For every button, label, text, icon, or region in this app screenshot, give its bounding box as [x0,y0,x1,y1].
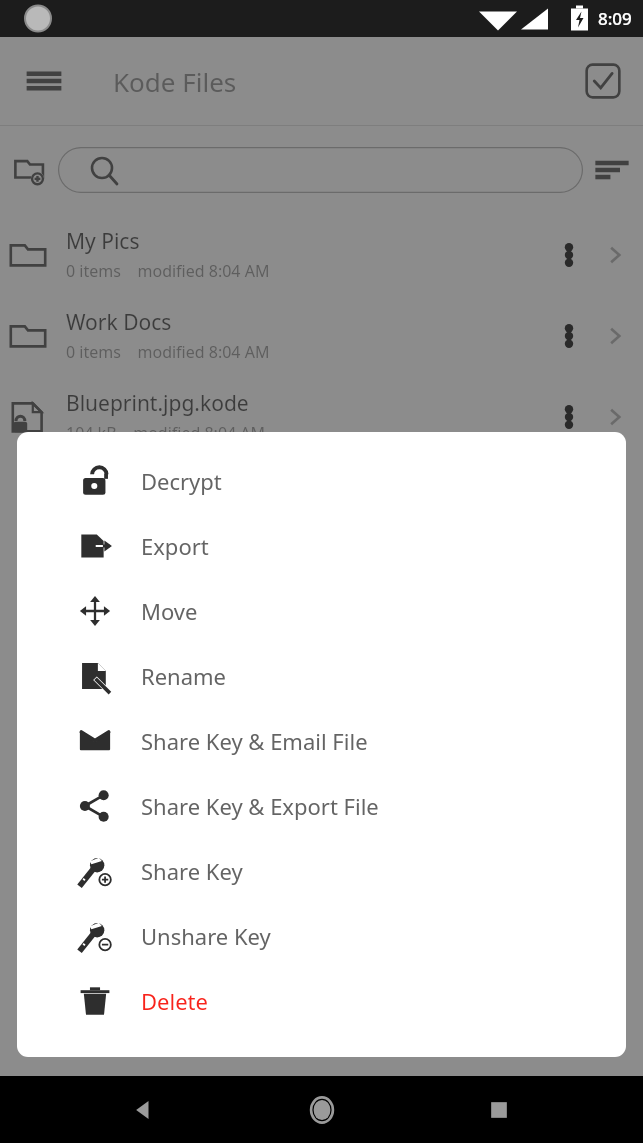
button[interactable]: Delete [17,968,626,1033]
button[interactable] [58,147,583,193]
staticText: My Pics [66,227,140,256]
staticText: Blueprint.jpg.kode [66,389,249,418]
button[interactable]: Export [17,513,626,578]
staticText: Delete [141,986,208,1016]
button[interactable]: Back [112,1078,176,1142]
button[interactable]: Recents [467,1078,531,1142]
staticText: Rename [141,661,227,691]
button[interactable]: Sort [587,145,637,195]
button[interactable]: Share Key & Export File [17,773,626,838]
button[interactable]: Share Key & Email File [17,708,626,773]
button[interactable]: Rename [17,643,626,708]
staticText: Unshare Key [141,921,271,951]
staticText: Share Key & Email File [141,726,368,756]
button[interactable]: Home [290,1078,354,1142]
button[interactable]: New folder [6,146,54,194]
button[interactable]: Work Docs [0,295,643,376]
button[interactable]: My Pics [0,214,643,295]
button[interactable]: Unshare Key [17,903,626,968]
staticText: Move [141,596,198,626]
staticText: Kode Files [113,64,237,99]
staticText: Export [141,531,209,561]
button[interactable]: Decrypt [17,448,626,513]
staticText: Work Docs [66,308,172,337]
button[interactable]: Share Key [17,838,626,903]
button[interactable]: Menu [18,55,70,107]
staticText: Share Key & Export File [141,791,379,821]
button[interactable]: Move [17,578,626,643]
button[interactable]: Open [593,314,637,358]
staticText: 8:09 [598,7,632,30]
button[interactable]: More options [545,393,593,441]
staticText: Share Key [141,856,243,886]
staticText: Decrypt [141,466,222,496]
button[interactable]: More options [545,312,593,360]
staticText: 104 kB modified 8:04 AM [66,422,266,444]
button[interactable]: Blueprint.jpg.kode [0,376,643,457]
button[interactable]: Select all [577,55,629,107]
button[interactable]: Open [593,395,637,439]
staticText: 0 items modified 8:04 AM [66,260,270,282]
button[interactable]: More options [545,231,593,279]
staticText: 0 items modified 8:04 AM [66,341,270,363]
button[interactable]: Open [593,233,637,277]
